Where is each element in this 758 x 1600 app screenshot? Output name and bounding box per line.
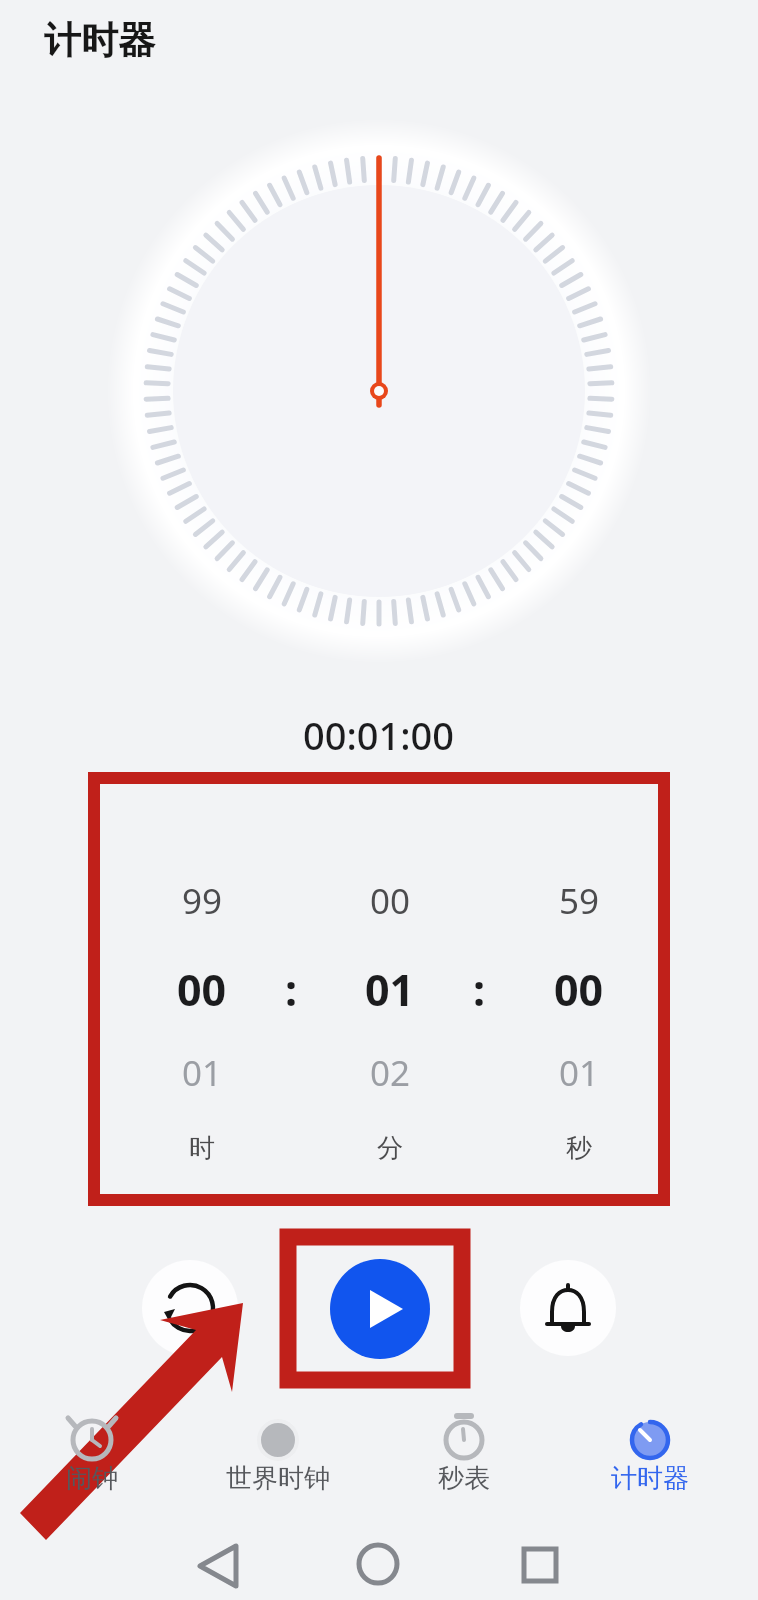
button[interactable]: 00: [320, 784, 460, 1194]
staticText: 闹钟: [66, 1462, 118, 1495]
staticText: 00: [177, 960, 227, 1019]
button[interactable]: 99: [132, 784, 272, 1194]
staticText: 计时器: [44, 17, 155, 64]
staticText: :: [285, 960, 298, 1019]
staticText: 秒: [566, 1132, 592, 1165]
staticText: 01: [182, 1049, 223, 1097]
button[interactable]: Reset: [142, 1260, 238, 1356]
button[interactable]: Home: [330, 1518, 426, 1600]
staticText: 分: [377, 1132, 403, 1165]
staticText: 00: [554, 960, 604, 1019]
staticText: 00:01:00: [303, 709, 455, 761]
staticText: 00: [370, 877, 411, 925]
staticText: 59: [559, 877, 600, 925]
staticText: 秒表: [438, 1462, 490, 1495]
button[interactable]: Start: [330, 1259, 430, 1359]
button[interactable]: 59: [509, 784, 649, 1194]
staticText: 01: [365, 960, 415, 1019]
button[interactable]: 计时器: [570, 1400, 730, 1500]
button[interactable]: Ringtone: [520, 1260, 616, 1356]
button[interactable]: 闹钟: [12, 1400, 172, 1500]
staticText: 01: [559, 1049, 600, 1097]
staticText: 02: [370, 1049, 411, 1097]
button[interactable]: Back: [170, 1518, 266, 1600]
button[interactable]: 世界时钟: [198, 1400, 358, 1500]
staticText: 计时器: [611, 1462, 689, 1495]
button[interactable]: 秒表: [384, 1400, 544, 1500]
button[interactable]: Recents: [492, 1518, 588, 1600]
staticText: 99: [182, 877, 223, 925]
staticText: :: [473, 960, 486, 1019]
staticText: 时: [189, 1132, 215, 1165]
staticText: 世界时钟: [226, 1462, 330, 1495]
